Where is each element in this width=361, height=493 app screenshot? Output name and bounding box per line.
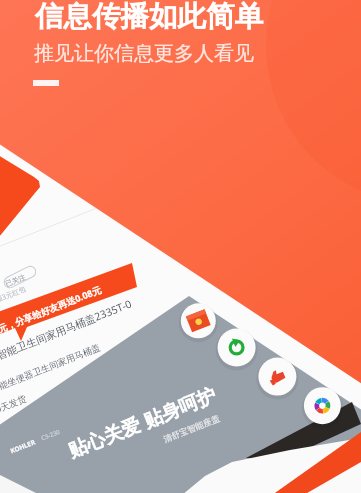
- staticText: 清舒宝智能座盖: [162, 413, 222, 445]
- button[interactable]: 信息传播如此简单: [35, 0, 263, 35]
- staticText: 信息传播如此简单: [35, 0, 263, 35]
- staticText: KOHLER: [9, 437, 36, 455]
- staticText: 已关注: [4, 272, 27, 288]
- staticText: 科勒智能坐便器卫生间家用马桶盖: [0, 341, 102, 401]
- staticText: 科勒智能卫生间家用马桶盖2335T-0: [0, 296, 134, 370]
- staticText: 推见让你信息更多人看见: [34, 41, 254, 66]
- staticText: 贴心关爱 贴身呵护: [64, 381, 220, 463]
- staticText: C3-230: [40, 428, 61, 442]
- staticText: 恭喜您获得0.06元，分享给好友再送0.08元: [0, 283, 104, 359]
- staticText: 领3元红包: [0, 284, 28, 305]
- staticText: 预售60天发货: [0, 391, 28, 423]
